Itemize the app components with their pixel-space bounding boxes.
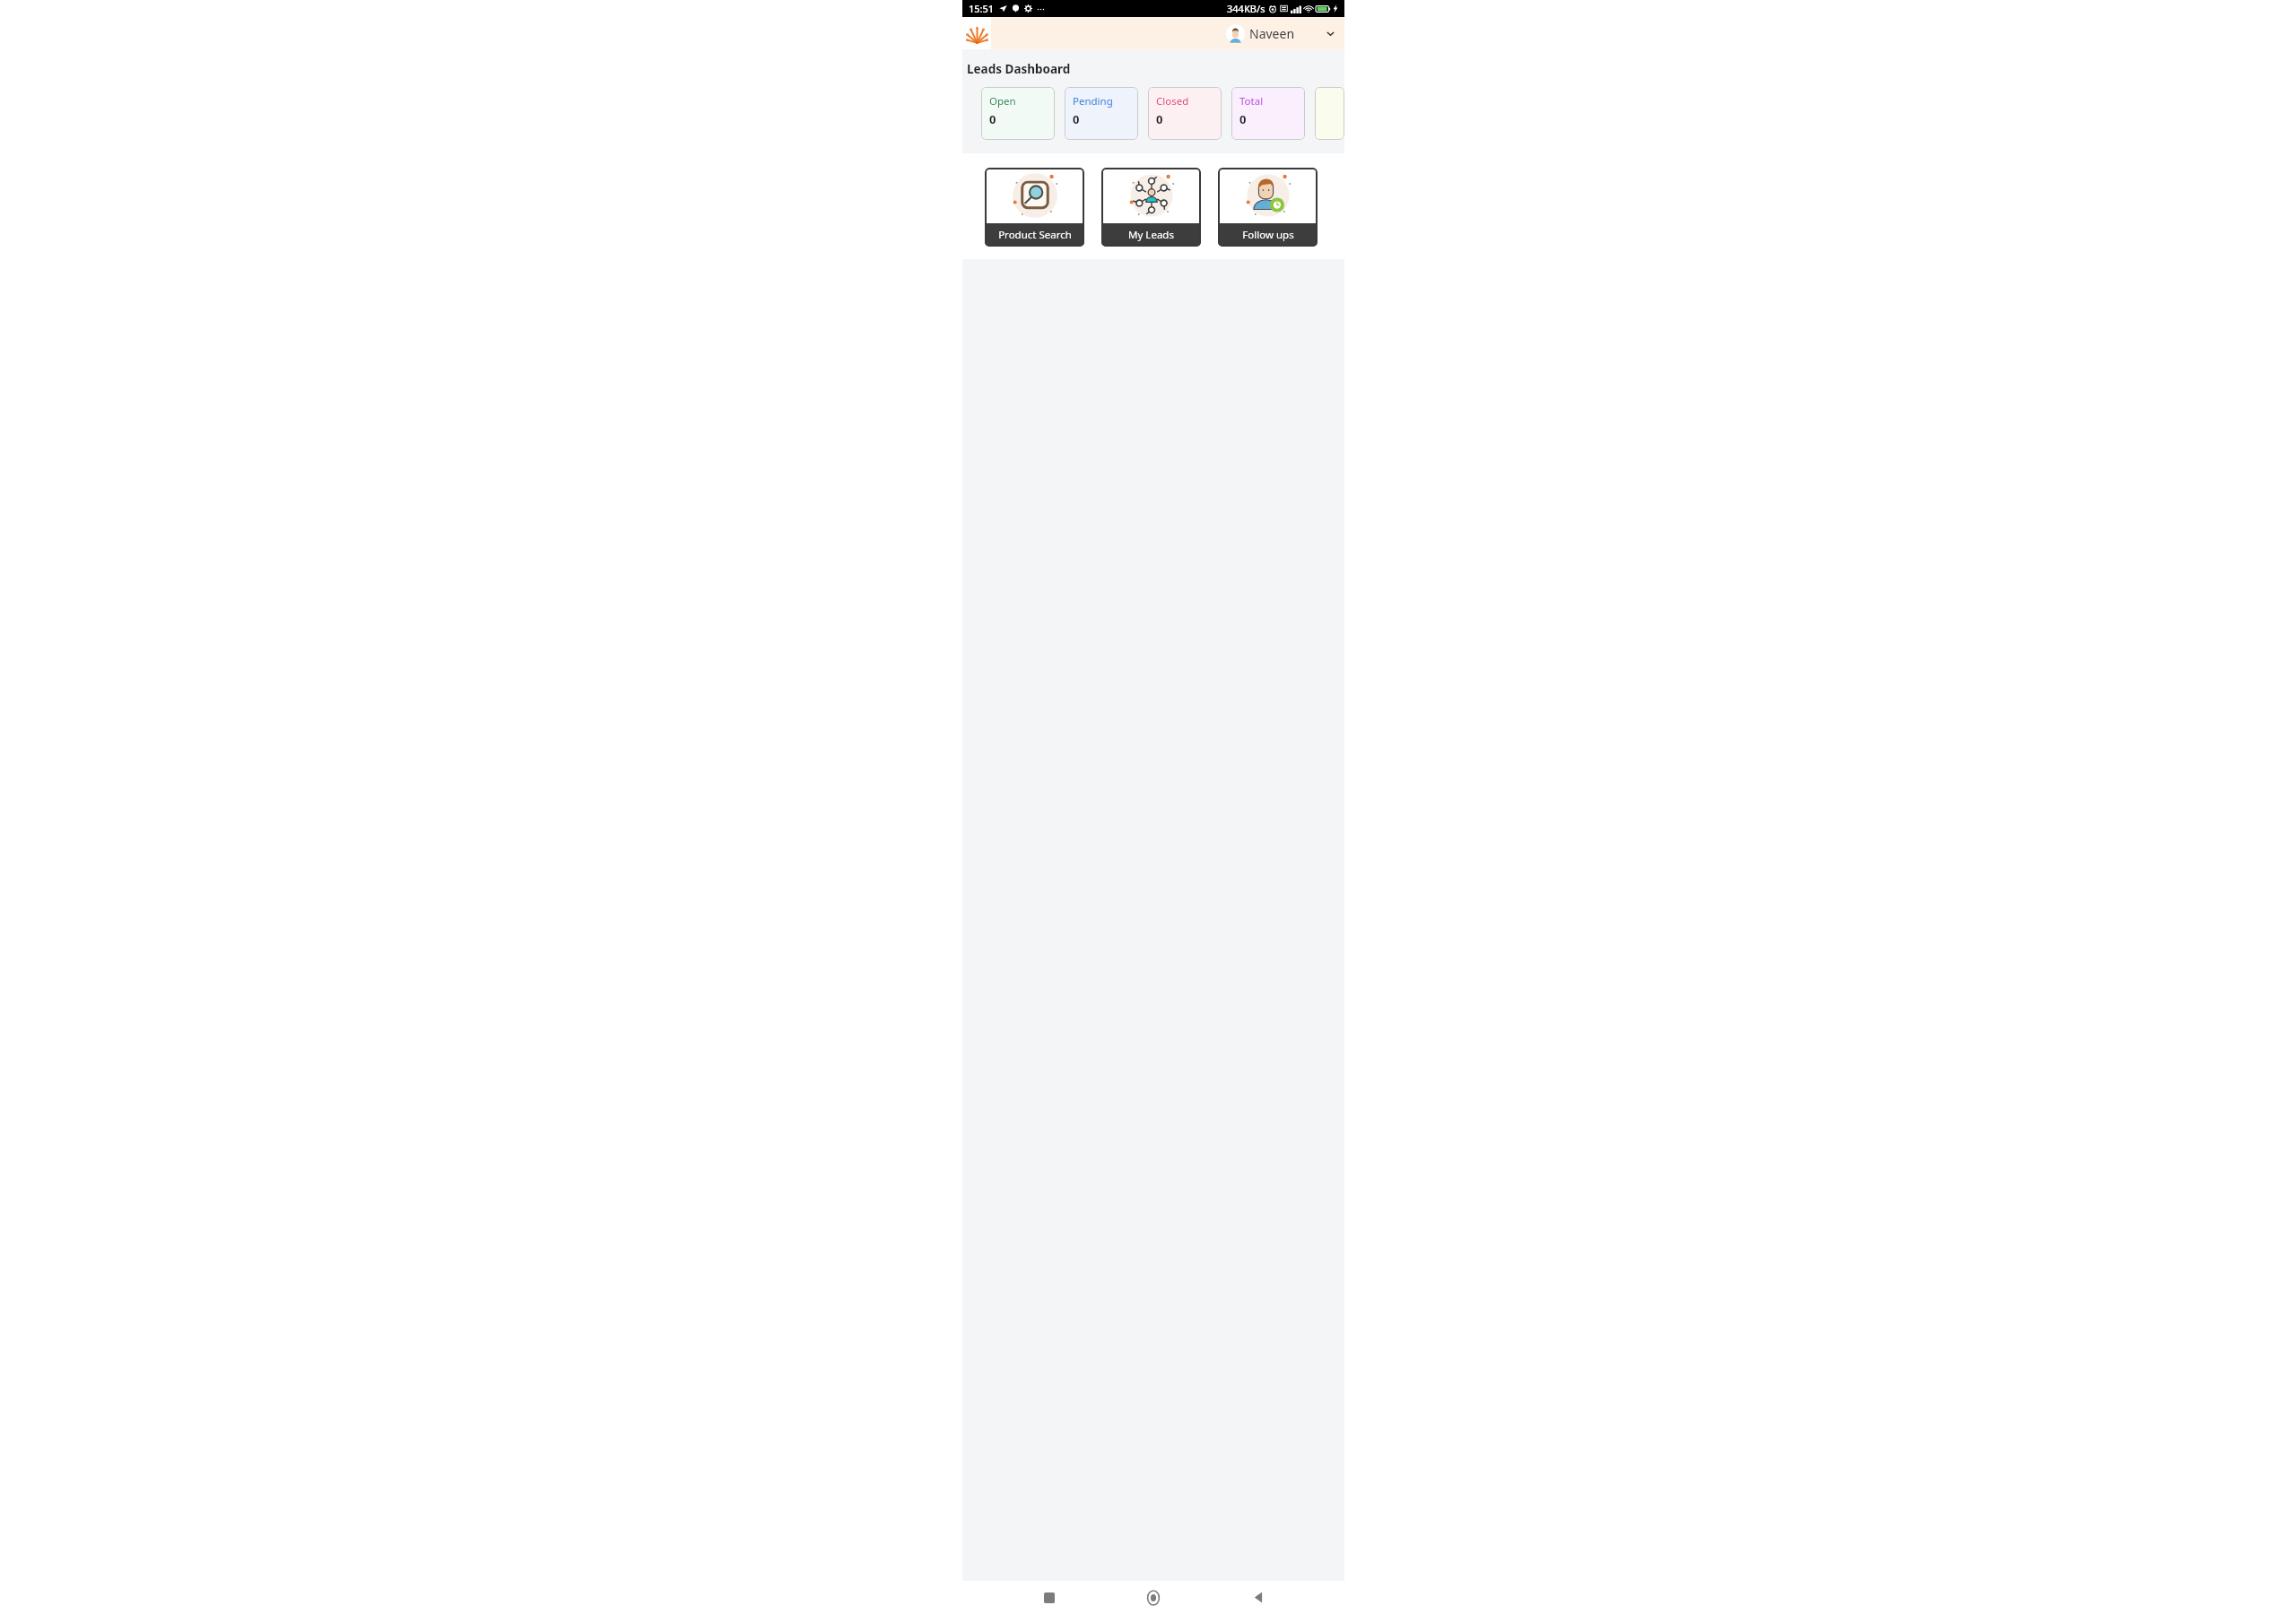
staticText: Closed xyxy=(1156,94,1189,108)
button[interactable]: Product Search xyxy=(985,168,1084,247)
button[interactable]: More leads stats xyxy=(1315,87,1344,140)
staticText: Open xyxy=(989,94,1016,108)
staticText: 15:51 xyxy=(969,2,995,15)
staticText: Product Search xyxy=(998,228,1072,242)
staticText: 0 xyxy=(1239,111,1247,127)
button[interactable]: Closed xyxy=(1148,87,1222,140)
button[interactable]: Open xyxy=(981,87,1055,140)
staticText: My Leads xyxy=(1128,228,1174,242)
staticText: Total xyxy=(1239,94,1264,108)
staticText: 344KB/s xyxy=(1227,2,1265,15)
button[interactable]: Home xyxy=(1135,1581,1171,1614)
staticText: Follow ups xyxy=(1242,228,1294,242)
staticText: Naveen xyxy=(1249,25,1295,42)
button[interactable]: Total xyxy=(1231,87,1305,140)
staticText: Leads Dashboard xyxy=(967,61,1071,77)
staticText: 0 xyxy=(1156,111,1163,127)
staticText: Pending xyxy=(1073,94,1113,108)
staticText: 0 xyxy=(1073,111,1080,127)
button[interactable]: My Leads xyxy=(1101,168,1201,247)
button[interactable]: Back xyxy=(1240,1581,1276,1614)
button[interactable]: Expand account menu xyxy=(1324,27,1337,40)
button[interactable]: Naveen xyxy=(991,17,1344,49)
staticText: 0 xyxy=(989,111,996,127)
button[interactable]: Follow ups xyxy=(1218,168,1318,247)
button[interactable]: Pending xyxy=(1065,87,1138,140)
button[interactable]: App logo xyxy=(962,17,991,49)
button[interactable]: Recent apps xyxy=(1031,1581,1067,1614)
